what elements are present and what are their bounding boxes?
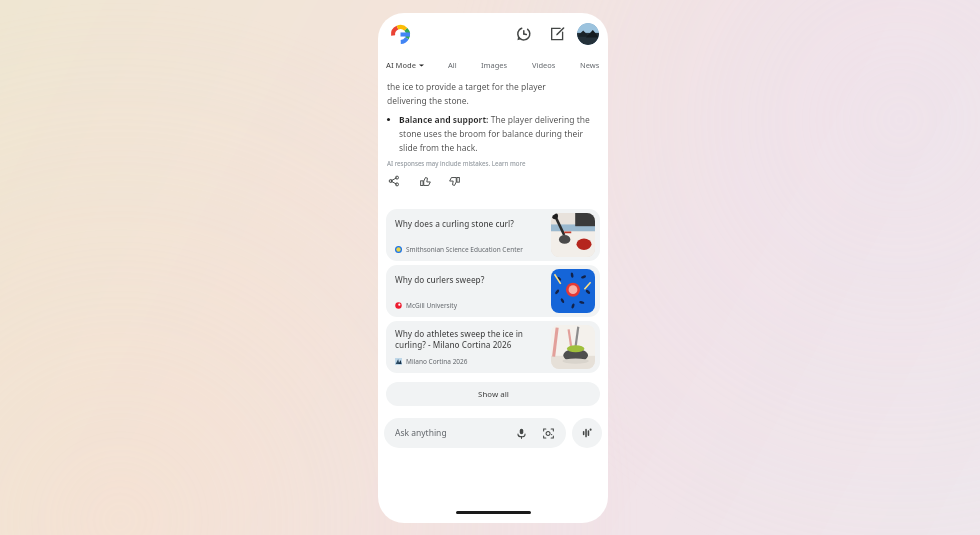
button[interactable]: History xyxy=(510,21,536,47)
staticText: Balance and support: The player deliveri… xyxy=(399,114,599,153)
staticText: News xyxy=(580,60,600,70)
button[interactable]: Images xyxy=(481,60,508,70)
staticText: Videos xyxy=(532,60,556,70)
button[interactable]: Share xyxy=(383,170,405,192)
button[interactable]: Thumbs down xyxy=(443,170,465,192)
button[interactable]: News xyxy=(580,60,600,70)
staticText: the ice to provide a target for the play… xyxy=(387,81,546,106)
button[interactable]: Account xyxy=(577,23,599,45)
button[interactable]: New chat xyxy=(544,21,570,47)
staticText: Why do athletes sweep the ice in curling… xyxy=(395,328,523,350)
staticText: Why do curlers sweep? xyxy=(395,274,485,285)
button[interactable]: Show all xyxy=(386,382,600,406)
staticText: AI responses may include mistakes. Learn… xyxy=(387,159,526,167)
button[interactable]: Why does a curling stone curl? xyxy=(386,209,600,261)
button[interactable]: Voice search xyxy=(510,422,532,444)
staticText: All xyxy=(448,60,457,70)
staticText: Show all xyxy=(478,389,509,400)
button[interactable]: All xyxy=(448,60,457,70)
staticText: Smithsonian Science Education Center xyxy=(406,245,523,254)
button[interactable]: Live voice xyxy=(572,418,602,448)
button[interactable]: Google xyxy=(387,21,413,47)
button[interactable]: Ask anything xyxy=(384,418,566,448)
staticText: AI Mode xyxy=(386,60,416,70)
staticText: Ask anything xyxy=(395,427,447,439)
staticText: Why does a curling stone curl? xyxy=(395,218,514,229)
button[interactable]: AI Mode xyxy=(386,60,424,70)
button[interactable]: Google Lens xyxy=(537,422,559,444)
button[interactable]: Why do curlers sweep? xyxy=(386,265,600,317)
button[interactable]: Why do athletes sweep the ice in curling… xyxy=(386,321,600,373)
staticText: Milano Cortina 2026 xyxy=(406,357,468,366)
staticText: Images xyxy=(481,60,508,70)
button[interactable]: Thumbs up xyxy=(414,170,436,192)
button[interactable]: Videos xyxy=(532,60,556,70)
staticText: McGill University xyxy=(406,301,458,310)
